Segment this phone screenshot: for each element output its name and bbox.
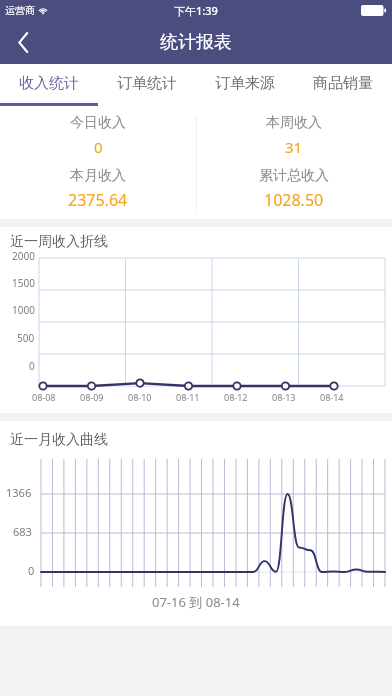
staticText: 07-16 到 08-14 <box>152 593 240 611</box>
staticText: 08-12 <box>224 391 248 403</box>
staticText: 2000 <box>12 249 35 263</box>
staticText: 近一周收入折线 <box>10 233 108 251</box>
staticText: 下午1:39 <box>174 3 218 18</box>
staticText: 08-08 <box>32 391 56 403</box>
staticText: 累计总收入 <box>259 167 329 185</box>
button[interactable]: 收入统计 <box>0 64 98 103</box>
staticText: 08-13 <box>272 391 296 403</box>
staticText: 本周收入 <box>266 114 322 132</box>
button[interactable]: 订单来源 <box>196 64 294 103</box>
staticText: 31 <box>285 137 303 157</box>
staticText: 0 <box>28 563 35 578</box>
staticText: 本月收入 <box>70 167 126 185</box>
button[interactable]: 订单统计 <box>98 64 196 103</box>
staticText: 1366 <box>6 485 32 500</box>
staticText: 0 <box>94 137 103 157</box>
staticText: 订单统计 <box>117 74 177 93</box>
staticText: 0 <box>29 359 35 373</box>
staticText: 08-11 <box>176 391 200 403</box>
staticText: 近一月收入曲线 <box>10 431 108 449</box>
staticText: 1500 <box>12 276 35 290</box>
staticText: 订单来源 <box>215 74 275 93</box>
staticText: 683 <box>13 524 32 539</box>
staticText: 运营商 <box>5 4 35 17</box>
staticText: 商品销量 <box>313 74 373 93</box>
staticText: 08-09 <box>80 391 104 403</box>
button[interactable]: 商品销量 <box>294 64 392 103</box>
staticText: 1000 <box>12 303 35 317</box>
staticText: 1028.50 <box>264 189 324 211</box>
staticText: 2375.64 <box>68 189 128 211</box>
staticText: 500 <box>17 331 35 345</box>
button[interactable]: Back <box>0 20 46 64</box>
staticText: 今日收入 <box>70 114 126 132</box>
staticText: 收入统计 <box>19 74 79 93</box>
staticText: 08-10 <box>128 391 152 403</box>
staticText: 统计报表 <box>160 31 232 54</box>
staticText: 08-14 <box>320 391 344 403</box>
